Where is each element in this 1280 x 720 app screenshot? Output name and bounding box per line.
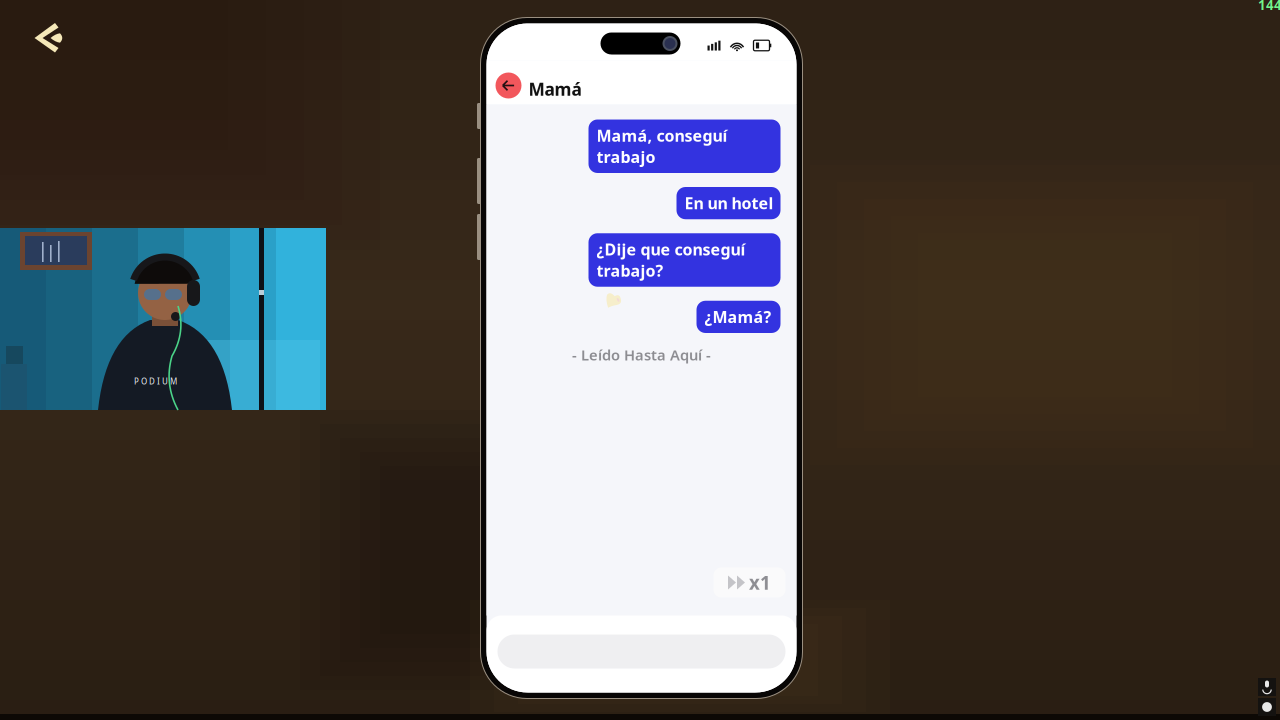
button[interactable]: Record [1258,698,1276,716]
button[interactable]: En un hotel [676,187,780,219]
button[interactable]: Playback speed [713,567,785,597]
staticText: 144 FPS [1258,0,1280,14]
staticText: ¿Mamá? [704,306,771,327]
button[interactable]: ¿Mamá? [696,301,780,333]
staticText: Mamá, conseguí trabajo [596,125,727,167]
button[interactable]: Microphone [1258,678,1276,696]
button[interactable]: Mamá, conseguí trabajo [588,119,780,173]
button[interactable]: Back [495,72,521,98]
staticText: ¿Dije que conseguí trabajo? [596,239,745,281]
staticText: - Leído Hasta Aquí - [572,345,711,364]
staticText: P O D I U M [134,376,177,387]
button[interactable]: ¿Dije que conseguí trabajo? [588,233,780,287]
staticText: Mamá [528,77,581,100]
button[interactable]: Back [28,18,74,64]
staticText: x1 [749,570,771,595]
staticText: En un hotel [684,192,773,214]
